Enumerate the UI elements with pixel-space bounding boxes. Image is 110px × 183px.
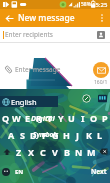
staticText: Q (2, 112, 10, 124)
staticText: I (81, 112, 85, 124)
staticText: New message (18, 12, 75, 24)
button[interactable]: W (11, 109, 22, 126)
button[interactable]: Send message (93, 62, 109, 78)
staticText: X (28, 146, 35, 158)
button[interactable]: Emoji (0, 160, 12, 183)
button[interactable]: Space (26, 160, 88, 183)
staticText: S (20, 129, 25, 141)
button[interactable]: More options (94, 10, 110, 26)
button[interactable]: F (39, 126, 50, 143)
staticText: B (64, 146, 70, 158)
staticText: Enter message (15, 65, 61, 74)
staticText: K (86, 129, 92, 141)
staticText: C (40, 146, 46, 158)
staticText: P (102, 112, 108, 124)
staticText: E (25, 112, 31, 124)
button[interactable]: Theme (81, 93, 92, 104)
staticText: D (30, 129, 37, 141)
button[interactable]: I (77, 109, 88, 126)
staticText: Symbols (33, 130, 59, 139)
button[interactable]: P (99, 109, 110, 126)
button[interactable]: Y (55, 109, 66, 126)
button[interactable]: L (94, 126, 105, 143)
button[interactable]: A (5, 126, 17, 143)
button[interactable]: Shift (0, 143, 13, 160)
staticText: O (90, 112, 98, 124)
staticText: U (68, 112, 75, 124)
button[interactable]: Q (0, 109, 11, 126)
staticText: J (76, 129, 79, 141)
staticText: 15:25 (92, 1, 108, 9)
button[interactable]: J (72, 126, 83, 143)
staticText: A (8, 129, 15, 141)
button[interactable]: V (49, 143, 61, 160)
staticText: F (42, 129, 47, 141)
staticText: H (63, 129, 70, 141)
button[interactable]: D (28, 126, 39, 143)
staticText: M (87, 146, 96, 158)
button[interactable]: Back (0, 9, 18, 27)
button[interactable]: Backspace (97, 143, 110, 160)
button[interactable]: M (85, 143, 97, 160)
staticText: Enter recipients (5, 30, 53, 39)
button[interactable]: G (50, 126, 61, 143)
staticText: V (52, 146, 58, 158)
button[interactable]: Z (13, 143, 25, 160)
button[interactable]: T (44, 109, 55, 126)
button[interactable]: Pick contact (97, 31, 105, 39)
button[interactable]: Next (88, 160, 110, 183)
button[interactable]: O (88, 109, 99, 126)
button[interactable]: Keyboard settings (97, 93, 108, 104)
button[interactable]: N (73, 143, 85, 160)
button[interactable]: X (25, 143, 37, 160)
staticText: R (36, 112, 42, 124)
staticText: EN (15, 168, 24, 176)
staticText: 58% (81, 1, 91, 8)
button[interactable]: English (0, 96, 58, 107)
staticText: Z (16, 146, 22, 158)
staticText: L (97, 129, 103, 141)
staticText: Next (91, 167, 107, 176)
button[interactable]: U (66, 109, 77, 126)
staticText: Y (58, 112, 64, 124)
button[interactable]: S (17, 126, 28, 143)
staticText: English (11, 97, 37, 107)
staticText: W (12, 112, 21, 124)
button[interactable]: K (83, 126, 94, 143)
staticText: G (52, 129, 59, 141)
staticText: N (75, 146, 83, 158)
button[interactable]: E (22, 109, 33, 126)
button[interactable]: B (61, 143, 73, 160)
button[interactable]: C (37, 143, 49, 160)
staticText: T (47, 112, 53, 124)
staticText: Digital (31, 113, 55, 123)
button[interactable]: Change language (2, 98, 10, 106)
button[interactable]: R (33, 109, 44, 126)
staticText: 160/1 (94, 79, 108, 86)
button[interactable]: H (61, 126, 72, 143)
button[interactable]: EN (12, 160, 26, 183)
